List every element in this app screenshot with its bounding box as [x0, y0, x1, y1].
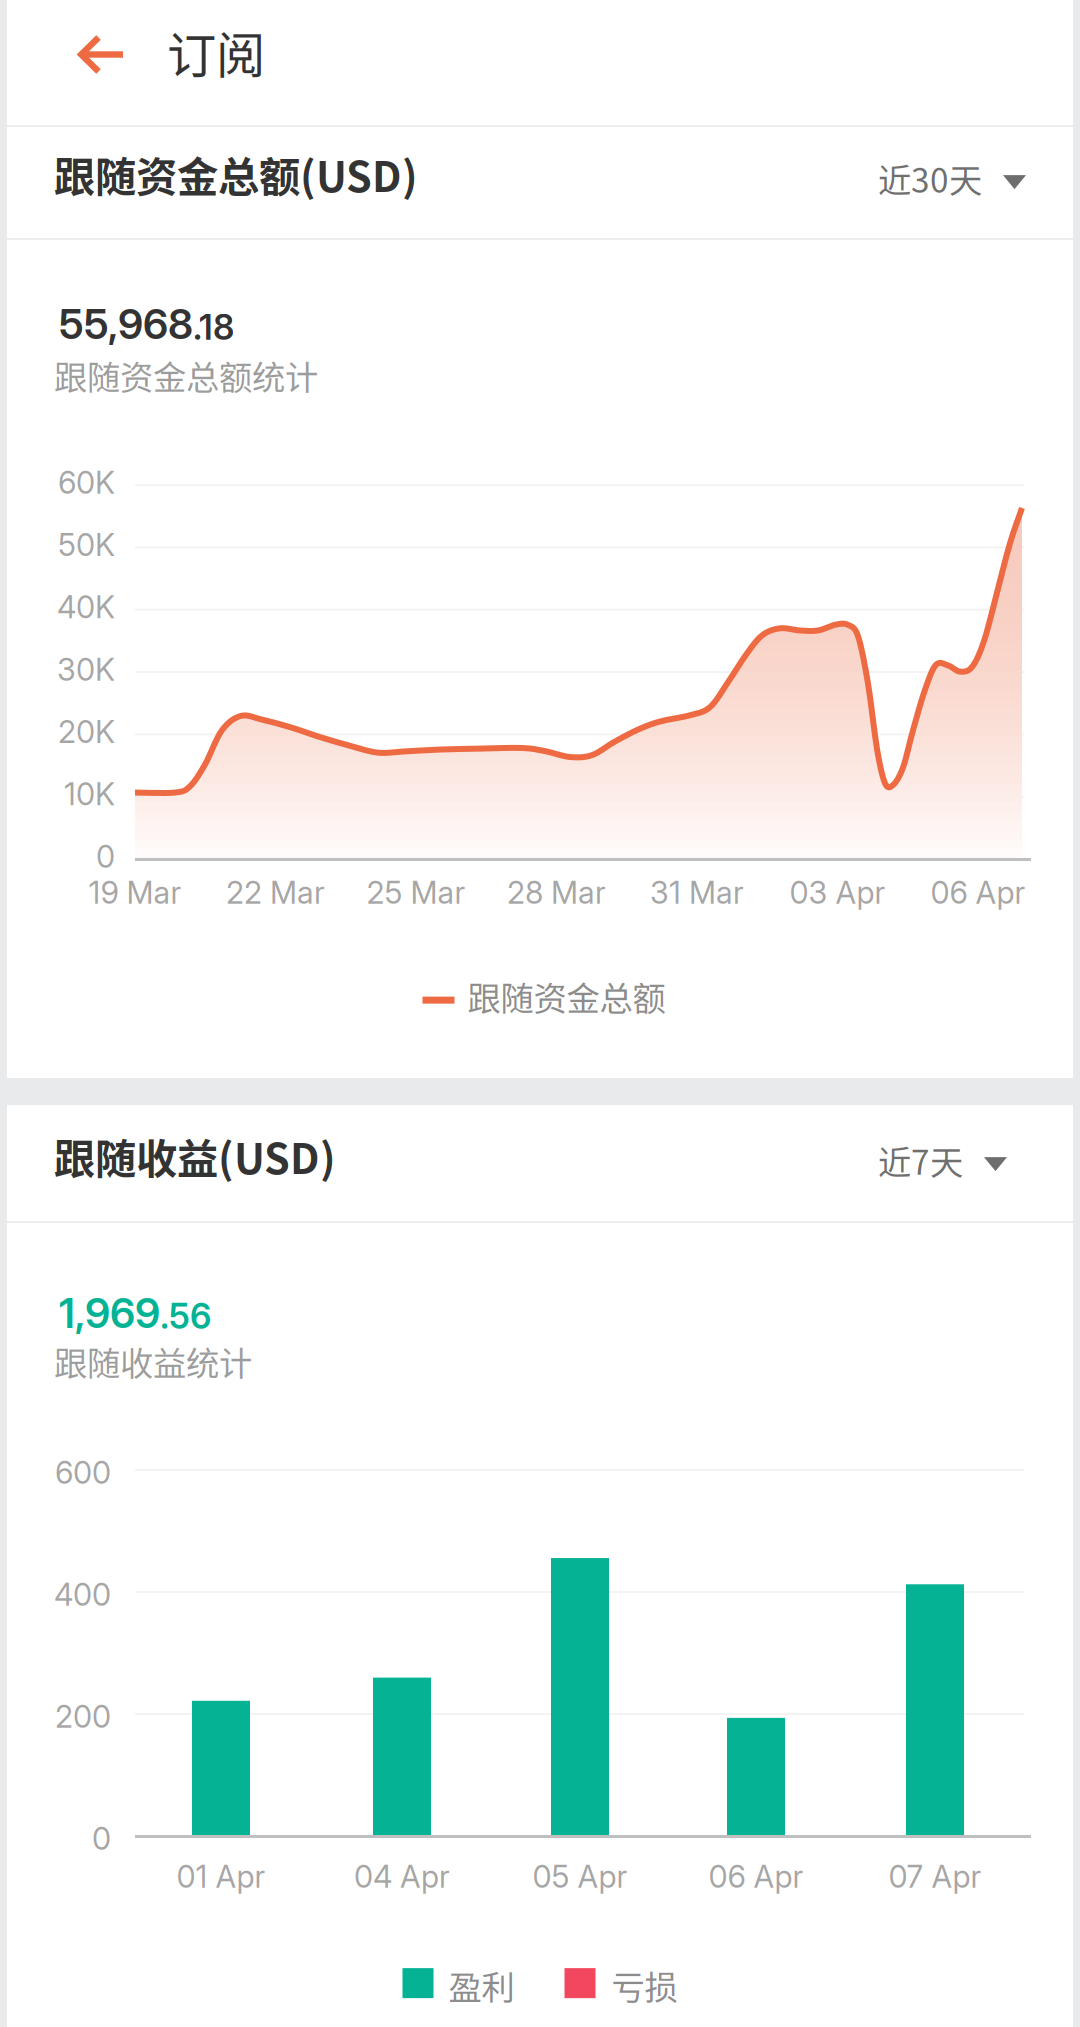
staticText: 19 Mar: [88, 874, 181, 911]
staticText: 55,968: [59, 299, 193, 349]
staticText: 40K: [57, 589, 115, 626]
staticText: 近7天: [878, 1136, 963, 1184]
staticText: 05 Apr: [532, 1858, 627, 1895]
staticText: 31 Mar: [650, 874, 744, 911]
staticText: 0: [92, 1820, 111, 1857]
button[interactable]: Back: [7, 0, 135, 98]
staticText: 盈利: [448, 1961, 514, 2009]
staticText: 50K: [58, 526, 115, 563]
staticText: 28 Mar: [507, 874, 606, 911]
staticText: 跟随收益(USD): [54, 1126, 336, 1186]
staticText: 近30天: [878, 154, 982, 202]
staticText: 06 Apr: [930, 874, 1025, 911]
staticText: 订阅: [167, 16, 265, 87]
staticText: 01 Apr: [176, 1858, 265, 1895]
staticText: 07 Apr: [888, 1858, 981, 1895]
staticText: 06 Apr: [708, 1858, 803, 1895]
staticText: 600: [55, 1454, 111, 1491]
staticText: 跟随资金总额(USD): [54, 144, 418, 204]
button[interactable]: 近30天: [7, 127, 197, 227]
staticText: 10K: [64, 776, 115, 813]
staticText: 22 Mar: [226, 874, 325, 911]
staticText: 20K: [58, 713, 115, 750]
staticText: 400: [54, 1576, 111, 1613]
button[interactable]: 近7天: [7, 1105, 197, 1205]
staticText: .18: [193, 306, 234, 348]
staticText: 0: [96, 838, 115, 875]
staticText: 30K: [57, 651, 115, 688]
staticText: 亏损: [611, 1961, 677, 2009]
staticText: 1,969: [59, 1288, 160, 1338]
staticText: 04 Apr: [354, 1858, 450, 1895]
staticText: 200: [55, 1698, 111, 1735]
staticText: 跟随资金总额统计: [54, 351, 318, 399]
staticText: 跟随收益统计: [54, 1337, 252, 1385]
staticText: 60K: [58, 464, 115, 501]
staticText: 25 Mar: [366, 874, 465, 911]
staticText: 03 Apr: [789, 874, 885, 911]
staticText: 跟随资金总额: [467, 972, 665, 1020]
staticText: .56: [160, 1295, 211, 1337]
